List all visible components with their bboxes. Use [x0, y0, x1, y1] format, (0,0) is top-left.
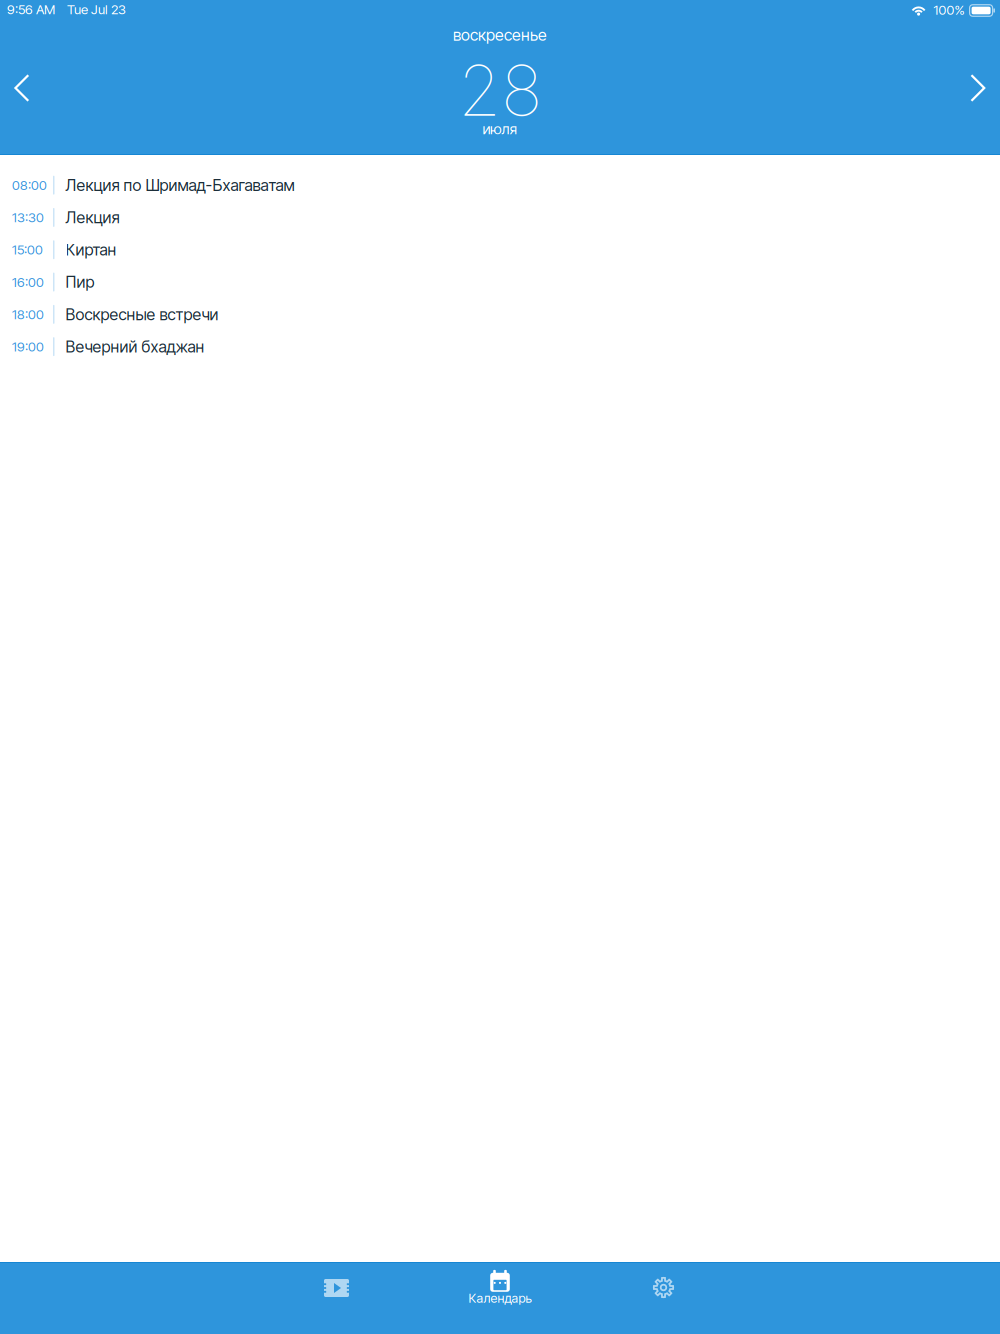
staticText: Лекция по Шримад-Бхагаватам — [65, 175, 294, 195]
button[interactable]: Предыдущий день — [0, 58, 44, 118]
button[interactable]: 08:00 — [0, 169, 1000, 201]
staticText: Пир — [65, 272, 94, 292]
staticText: Календарь — [468, 1290, 531, 1306]
staticText: 18:00 — [12, 306, 44, 322]
staticText: Киртан — [65, 240, 116, 259]
staticText: Лекция — [65, 208, 119, 227]
button[interactable]: Настройки — [582, 1263, 745, 1334]
staticText: июля — [482, 120, 517, 138]
staticText: 100% — [934, 2, 965, 18]
staticText: Воскресные встречи — [65, 305, 218, 324]
button[interactable]: Календарь — [418, 1263, 582, 1334]
button[interactable]: 16:00 — [0, 266, 1000, 298]
button[interactable]: 18:00 — [0, 298, 1000, 330]
staticText: 28 — [458, 49, 542, 132]
button[interactable]: 19:00 — [0, 330, 1000, 363]
staticText: 13:30 — [12, 209, 44, 225]
staticText: 08:00 — [12, 177, 47, 193]
staticText: 15:00 — [12, 242, 43, 258]
staticText: Tue Jul 23 — [67, 1, 126, 17]
staticText: воскресенье — [453, 25, 547, 45]
staticText: Вечерний бхаджан — [65, 337, 204, 356]
staticText: 19:00 — [12, 339, 44, 355]
staticText: 16:00 — [12, 274, 44, 290]
staticText: 9:56 AM — [7, 1, 55, 17]
button[interactable]: 13:30 — [0, 201, 1000, 234]
button[interactable]: Видео — [255, 1263, 418, 1334]
button[interactable]: Следующий день — [956, 58, 1000, 118]
button[interactable]: 15:00 — [0, 234, 1000, 266]
